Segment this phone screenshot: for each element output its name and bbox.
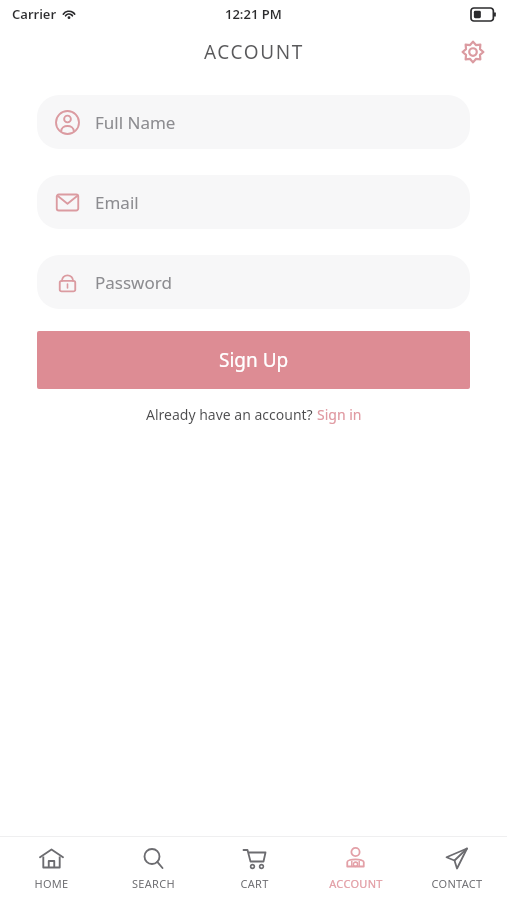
staticText: Email <box>95 191 139 214</box>
button[interactable]: Settings <box>453 32 493 72</box>
staticText: Full Name <box>95 111 176 134</box>
button[interactable]: ACCOUNT <box>305 837 406 900</box>
staticText: Sign in <box>317 405 362 424</box>
staticText: Password <box>95 271 172 294</box>
button[interactable]: CART <box>204 837 305 900</box>
button[interactable]: Sign Up <box>37 331 470 389</box>
staticText: SEARCH <box>132 876 175 891</box>
staticText: CONTACT <box>431 876 483 891</box>
staticText: 12:21 PM <box>225 5 282 23</box>
button[interactable]: HOME <box>0 837 102 900</box>
button[interactable]: Full Name <box>37 95 470 149</box>
staticText: ACCOUNT <box>204 39 304 65</box>
button[interactable]: CONTACT <box>406 837 507 900</box>
button[interactable]: SEARCH <box>102 837 204 900</box>
staticText: CART <box>240 876 269 891</box>
staticText: Carrier <box>12 5 57 23</box>
button[interactable]: Password <box>37 255 470 309</box>
staticText: Sign Up <box>219 347 289 373</box>
button[interactable]: Email <box>37 175 470 229</box>
staticText: HOME <box>34 876 69 891</box>
button[interactable]: Sign in <box>317 405 362 424</box>
staticText: ACCOUNT <box>329 876 383 891</box>
staticText: Already have an account? <box>146 405 317 424</box>
